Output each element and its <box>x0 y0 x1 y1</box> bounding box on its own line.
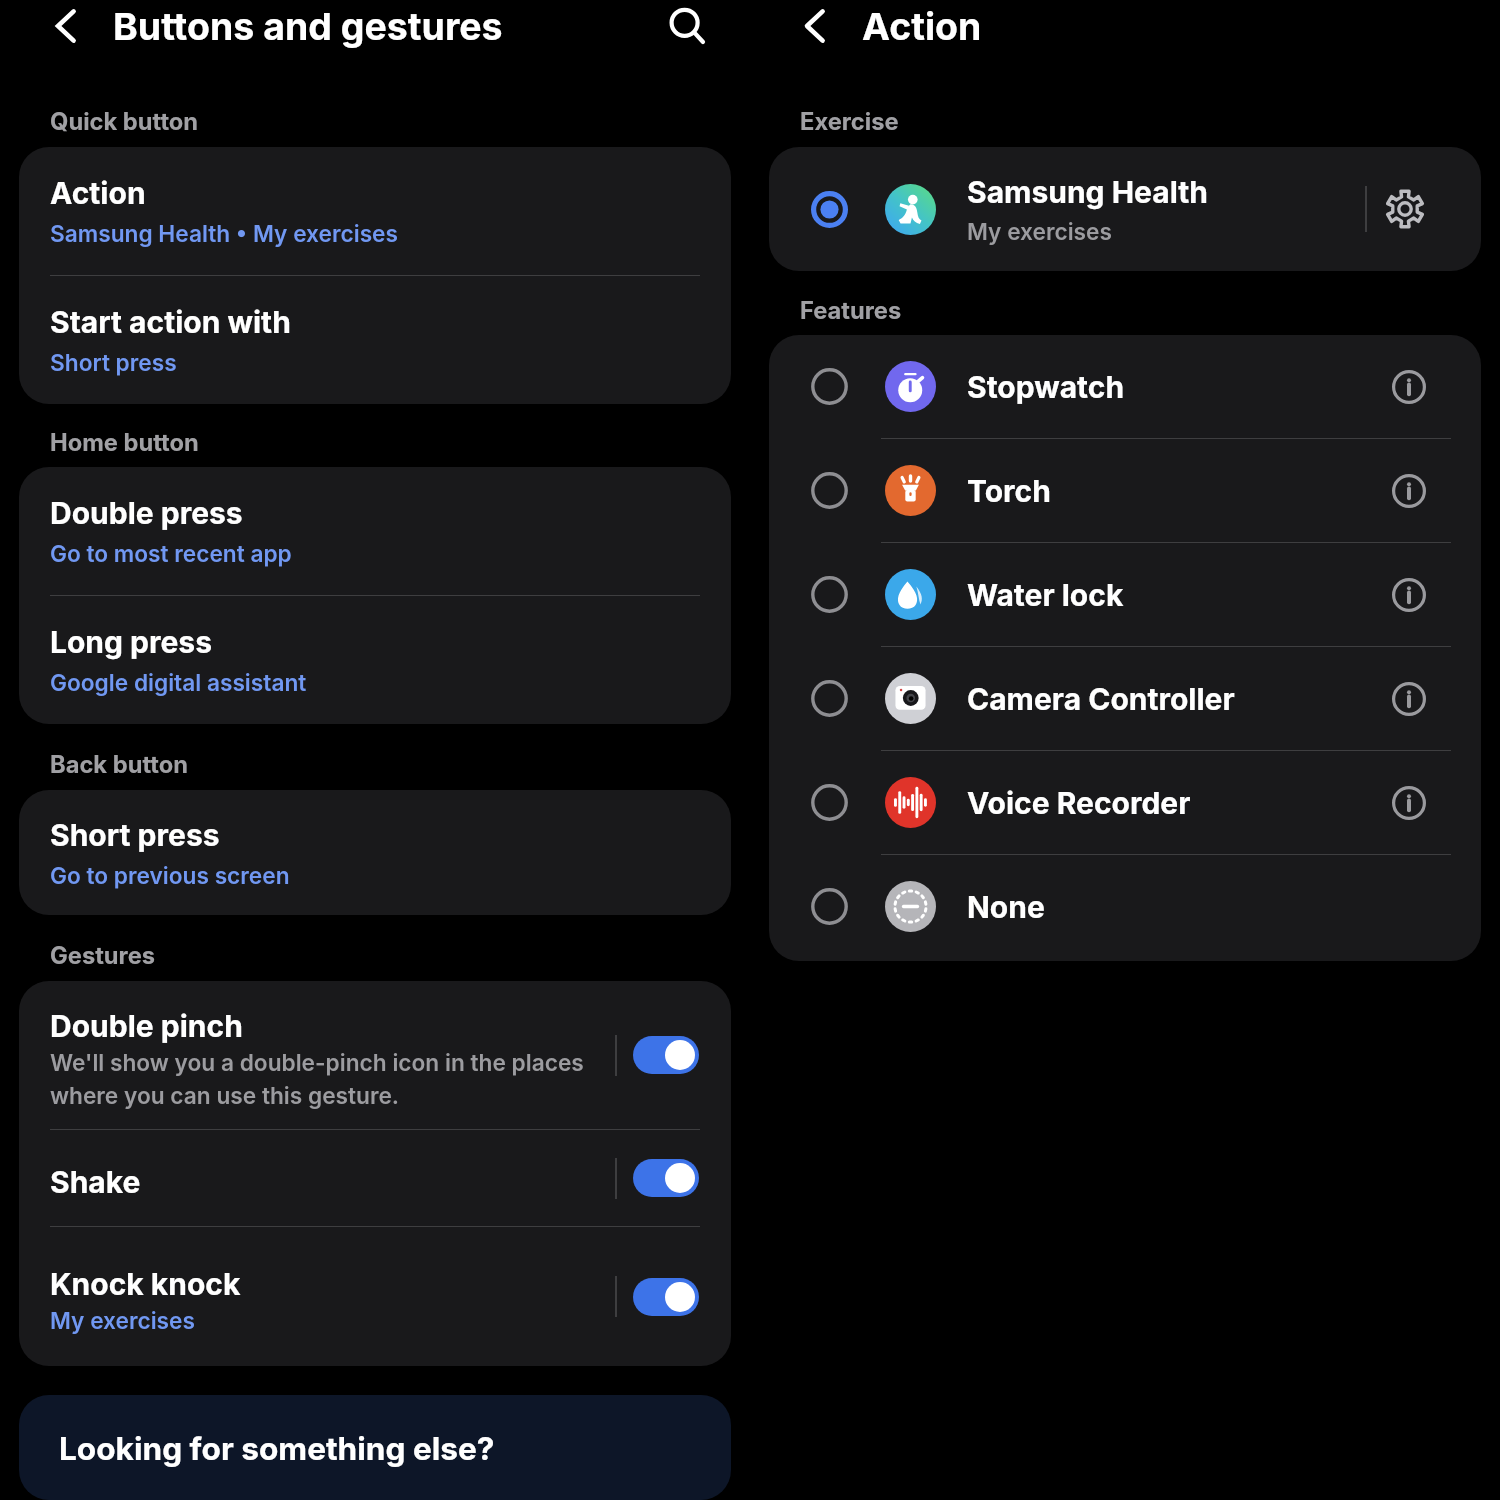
button[interactable]: Action <box>19 147 731 275</box>
other: Select Water lock <box>811 576 848 613</box>
other: Select None <box>811 888 848 925</box>
staticText: Short press <box>50 349 177 376</box>
staticText: Voice Recorder <box>967 785 1374 821</box>
staticText: Features <box>800 296 902 325</box>
other: Select Stopwatch <box>811 368 848 405</box>
staticText: Exercise <box>800 107 899 136</box>
staticText: Home button <box>50 428 199 457</box>
staticText: Action <box>862 4 982 49</box>
button[interactable]: Select None <box>769 855 1481 958</box>
staticText: My exercises <box>967 218 1112 245</box>
button[interactable]: Search <box>659 0 715 52</box>
other: Select Camera Controller <box>811 680 848 717</box>
button[interactable]: Turn off Knock knock <box>633 1278 699 1316</box>
staticText: Buttons and gestures <box>113 4 503 49</box>
button[interactable]: Shake <box>19 1130 731 1226</box>
staticText: Double press <box>50 495 243 531</box>
button[interactable]: Select Voice Recorder <box>769 751 1481 854</box>
button[interactable]: Info <box>1374 456 1444 526</box>
button[interactable]: Back <box>39 0 91 52</box>
button[interactable]: Select Camera Controller <box>769 647 1481 750</box>
staticText: Back button <box>50 750 188 779</box>
staticText: Samsung Health • My exercises <box>50 220 398 247</box>
staticText: My exercises <box>50 1307 195 1334</box>
staticText: Samsung Health <box>967 174 1208 210</box>
button[interactable]: Looking for something else? <box>19 1395 731 1500</box>
staticText: Google digital assistant <box>50 669 307 696</box>
staticText: Water lock <box>967 577 1374 613</box>
staticText: Shake <box>50 1164 141 1200</box>
staticText: Knock knock <box>50 1266 241 1302</box>
other: Select Voice Recorder <box>811 784 848 821</box>
staticText: Start action with <box>50 304 291 340</box>
button[interactable]: Info <box>1374 352 1444 422</box>
button[interactable]: Info <box>1374 768 1444 838</box>
staticText: None <box>967 889 1374 925</box>
staticText: Quick button <box>50 107 199 136</box>
button[interactable]: Select Stopwatch <box>769 335 1481 438</box>
button[interactable]: Samsung Health <box>769 147 1481 271</box>
button[interactable]: Long press <box>19 596 731 724</box>
staticText: Action <box>50 175 146 211</box>
other: Select Torch <box>811 472 848 509</box>
button[interactable]: Double press <box>19 467 731 595</box>
staticText: Long press <box>50 624 212 660</box>
button[interactable]: Short press <box>19 790 731 915</box>
button[interactable]: Turn off Shake <box>633 1159 699 1197</box>
staticText: Looking for something else? <box>59 1429 495 1467</box>
button[interactable]: Select Torch <box>769 439 1481 542</box>
button[interactable]: Info <box>1374 664 1444 734</box>
button[interactable]: Knock knock <box>19 1227 731 1366</box>
staticText: Stopwatch <box>967 369 1374 405</box>
staticText: Double pinch <box>50 1008 243 1044</box>
button[interactable]: Turn off Double pinch <box>633 1036 699 1074</box>
button[interactable]: Start action with <box>19 276 731 404</box>
staticText: Short press <box>50 817 220 853</box>
button[interactable]: Settings <box>1367 171 1443 247</box>
staticText: Gestures <box>50 941 156 970</box>
staticText: Go to most recent app <box>50 540 292 567</box>
staticText: Torch <box>967 473 1374 509</box>
button[interactable]: Info <box>1374 560 1444 630</box>
staticText: Go to previous screen <box>50 862 290 889</box>
button[interactable]: Double pinch <box>19 981 731 1129</box>
button[interactable]: Select Water lock <box>769 543 1481 646</box>
staticText: Camera Controller <box>967 681 1374 717</box>
button[interactable]: Back <box>788 0 840 52</box>
staticText: We'll show you a double-pinch icon in th… <box>50 1049 584 1110</box>
